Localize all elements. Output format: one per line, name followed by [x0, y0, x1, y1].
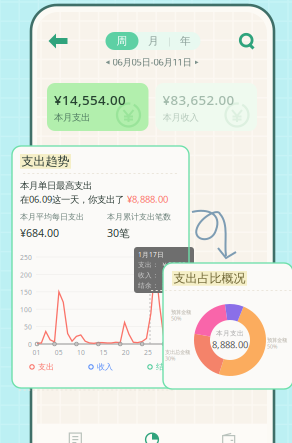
staticText: 05 [55, 348, 63, 357]
staticText: 30% [165, 355, 175, 362]
staticText: ¥8,888.00 [127, 193, 168, 205]
staticText: 1月17日 [138, 250, 164, 259]
staticText: 支出占比概况 [173, 271, 245, 286]
staticText: 支出： [138, 261, 159, 269]
staticText: 结余： [138, 281, 159, 290]
button[interactable]: 年 [170, 32, 200, 50]
staticText: 本月支出 [216, 329, 244, 337]
button[interactable]: Back [40, 28, 76, 54]
staticText: 250 [20, 253, 32, 262]
staticText: 支出总金额 [165, 349, 190, 356]
staticText: 0 [28, 340, 32, 349]
staticText: 15 [99, 348, 107, 357]
staticText: 预算金额 [171, 309, 191, 316]
staticText: 25 [144, 348, 152, 357]
button[interactable]: 明细 [37, 424, 114, 443]
staticText: ◀ [105, 59, 109, 65]
staticText: 50% [171, 315, 181, 322]
staticText: ¥14,554.00 [54, 91, 126, 109]
staticText: 本月平均每日支出 [20, 212, 84, 222]
button[interactable]: 月 [138, 32, 168, 50]
staticText: 8,888.00 [212, 338, 248, 351]
button[interactable]: 统计 [114, 424, 190, 443]
staticText: 150 [20, 288, 32, 297]
button[interactable]: Search [230, 28, 264, 54]
staticText: 年 [180, 34, 191, 47]
staticText: 收入： [138, 271, 159, 279]
staticText: 在06.09这一天，你支出了 [20, 193, 127, 205]
staticText: 01 [32, 348, 40, 357]
staticText: ￥324.00 [161, 271, 190, 280]
staticText: 周 [116, 34, 127, 47]
staticText: 本月支出 [54, 112, 90, 123]
staticText: 06月05日-06月11日 [112, 56, 191, 68]
staticText: 30 [166, 348, 174, 357]
staticText: 30笔 [107, 226, 130, 240]
staticText: 月 [148, 34, 159, 47]
staticText: 收入 [97, 362, 113, 372]
staticText: ￥96.00 [161, 260, 186, 269]
staticText: 预算金额 [267, 337, 287, 344]
staticText: 支出趋势 [21, 154, 69, 169]
staticText: 50 [24, 323, 32, 331]
staticText: 50% [267, 343, 277, 350]
button[interactable]: 资产 [190, 424, 267, 443]
staticText: ￥54.00 [161, 281, 186, 290]
staticText: 200 [20, 270, 32, 279]
staticText: 100 [20, 305, 32, 314]
staticText: 本月收入 [162, 112, 198, 123]
staticText: ¥684.00 [20, 226, 59, 240]
staticText: 结余 [156, 362, 172, 372]
staticText: 10 [77, 348, 85, 357]
staticText: 支出 [38, 362, 54, 372]
staticText: | [167, 35, 172, 47]
staticText: 本月单日最高支出 [20, 180, 92, 191]
staticText: ¥83,652.00 [162, 91, 234, 109]
staticText: 本月累计支出笔数 [107, 212, 171, 222]
button[interactable]: 周 [105, 32, 138, 50]
staticText: ▶ [194, 59, 198, 65]
staticText: 20 [122, 348, 130, 357]
